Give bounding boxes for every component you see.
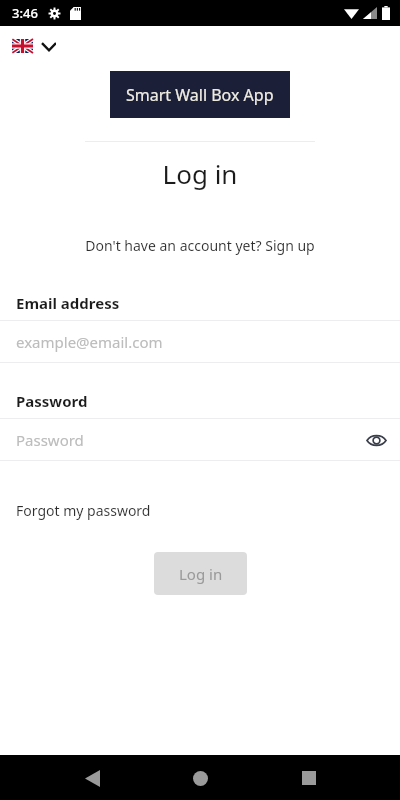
staticText: Email address [16,293,120,313]
staticText: example@email.com [16,332,163,352]
button[interactable]: Recent apps [291,760,327,796]
button[interactable]: Password [0,419,400,460]
button[interactable]: Don't have an account yet? Sign up [0,232,400,259]
staticText: Don't have an account yet? Sign up [85,236,315,255]
staticText: 3:46 [12,4,38,22]
button[interactable]: Select language: English [12,37,56,55]
staticText: Log in [0,156,400,191]
button[interactable]: example@email.com [0,321,400,362]
button[interactable]: Smart Wall Box App [110,71,290,118]
button[interactable]: Log in [154,552,247,595]
staticText: Password [16,391,88,411]
button[interactable]: Forgot my password [16,498,151,523]
staticText: Forgot my password [16,501,151,520]
staticText: Password [16,430,84,450]
staticText: Log in [179,564,223,584]
staticText: Smart Wall Box App [126,84,274,106]
button[interactable]: Home [182,760,218,796]
button[interactable]: Show password [360,424,392,456]
button[interactable]: Back [74,760,110,796]
